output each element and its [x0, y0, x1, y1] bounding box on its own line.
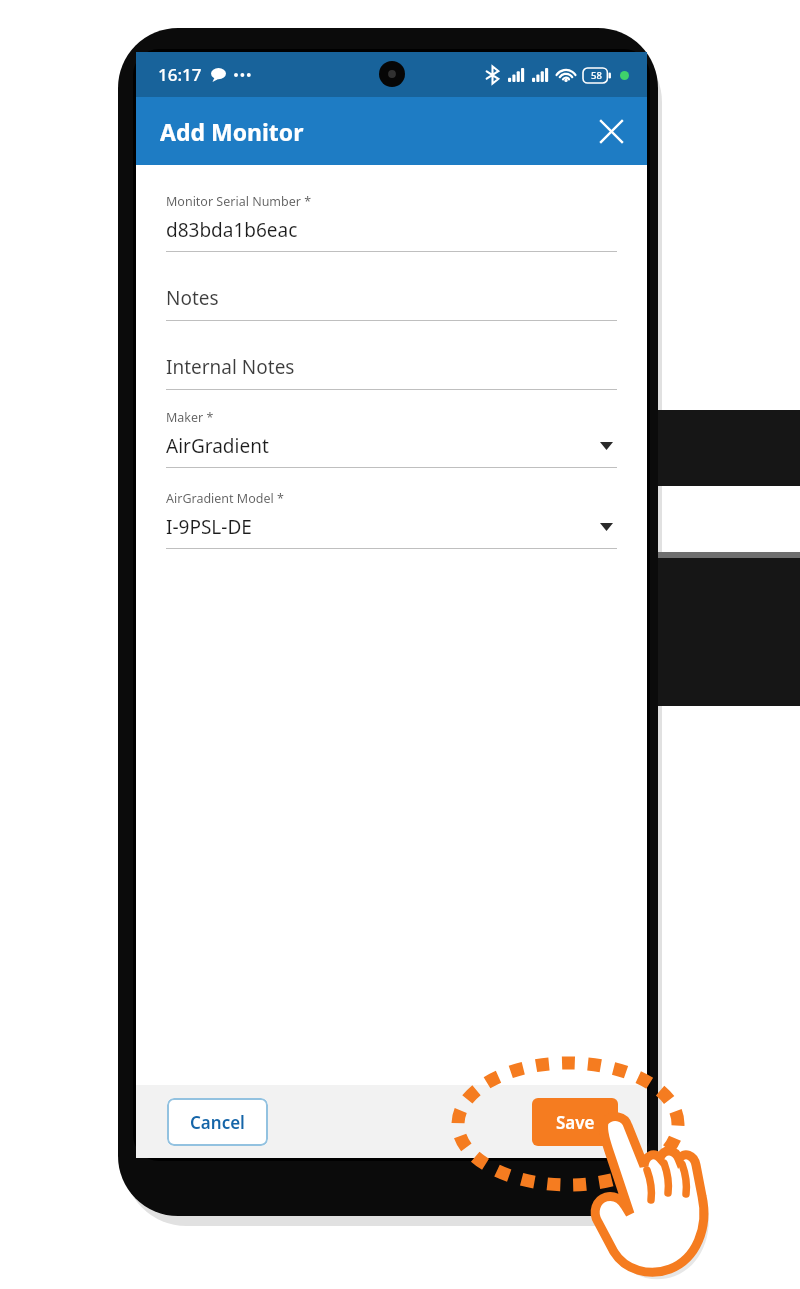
staticText: Save — [556, 1111, 595, 1134]
staticText: Monitor Serial Number * — [166, 193, 312, 210]
staticText: Notes — [166, 285, 219, 311]
staticText: Add Monitor — [160, 116, 304, 147]
staticText: Maker * — [166, 409, 214, 426]
button[interactable]: Maker * — [166, 409, 617, 468]
staticText: I-9PSL-DE — [166, 514, 252, 540]
button[interactable]: Cancel — [167, 1098, 268, 1146]
staticText: Internal Notes — [166, 354, 295, 380]
staticText: Cancel — [190, 1111, 245, 1134]
staticText: AirGradient Model * — [166, 490, 284, 507]
button[interactable]: AirGradient Model * — [166, 490, 617, 549]
staticText: 16:17 — [158, 63, 202, 86]
other: Open Maker * dropdown — [600, 442, 613, 450]
staticText: AirGradient — [166, 433, 269, 459]
button[interactable]: Notes — [166, 285, 617, 321]
button[interactable]: Monitor Serial Number * — [166, 193, 617, 252]
other: Open AirGradient Model * dropdown — [600, 523, 613, 531]
staticText: 58 — [591, 69, 602, 82]
staticText: d83bda1b6eac — [166, 217, 298, 243]
button[interactable]: Save — [532, 1098, 618, 1146]
button[interactable]: Internal Notes — [166, 354, 617, 390]
button[interactable]: Close — [587, 107, 635, 155]
